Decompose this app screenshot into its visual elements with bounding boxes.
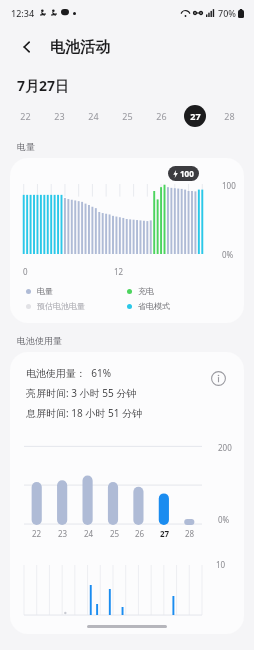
staticText: 27 xyxy=(190,110,201,122)
staticText: 70% xyxy=(218,7,236,19)
staticText: 24 xyxy=(84,528,94,539)
staticText: 0% xyxy=(222,249,234,260)
button[interactable]: 22 xyxy=(14,105,36,127)
staticText: 12:34 xyxy=(11,7,35,19)
staticText: 充电 xyxy=(138,286,154,296)
staticText: 23 xyxy=(54,110,65,122)
staticText: 亮屏时间: 3 小时 55 分钟 xyxy=(26,386,137,400)
button[interactable]: 100 xyxy=(10,158,244,323)
staticText: 23 xyxy=(58,528,68,539)
staticText: 电池使用量： 61% xyxy=(26,366,111,380)
staticText: 10 xyxy=(216,559,226,570)
staticText: 24 xyxy=(88,110,99,122)
button[interactable]: 信息 xyxy=(206,366,230,390)
button[interactable]: 24 xyxy=(82,105,104,127)
staticText: 预估电池电量 xyxy=(37,301,85,311)
staticText: 省电模式 xyxy=(138,301,170,311)
staticText: 22 xyxy=(20,110,31,122)
staticText: 28 xyxy=(185,528,195,539)
staticText: 100 xyxy=(180,168,194,179)
staticText: 电量 xyxy=(37,286,53,296)
staticText: 电池使用量 xyxy=(17,335,62,346)
staticText: 28 xyxy=(224,110,235,122)
staticText: 电池活动 xyxy=(50,38,110,57)
button[interactable]: 返回 xyxy=(12,32,42,62)
staticText: 息屏时间: 18 小时 51 分钟 xyxy=(26,406,142,420)
staticText: 0 xyxy=(23,266,28,277)
staticText: 25 xyxy=(110,528,120,539)
staticText: 100 xyxy=(222,180,236,191)
staticText: 25 xyxy=(122,110,133,122)
staticText: 26 xyxy=(156,110,167,122)
staticText: 26 xyxy=(135,528,145,539)
staticText: 200 xyxy=(218,442,232,453)
staticText: 22 xyxy=(32,528,42,539)
button[interactable]: 28 xyxy=(218,105,240,127)
staticText: 7月27日 xyxy=(17,76,70,95)
button[interactable]: 25 xyxy=(116,105,138,127)
button[interactable]: 23 xyxy=(48,105,70,127)
button[interactable]: 电池使用量： 61% xyxy=(10,352,244,634)
staticText: 27 xyxy=(160,528,170,539)
button[interactable]: 27 xyxy=(184,105,206,127)
staticText: 电量 xyxy=(17,141,35,152)
staticText: 12 xyxy=(114,266,124,277)
button[interactable]: 26 xyxy=(150,105,172,127)
staticText: 0% xyxy=(218,514,230,525)
